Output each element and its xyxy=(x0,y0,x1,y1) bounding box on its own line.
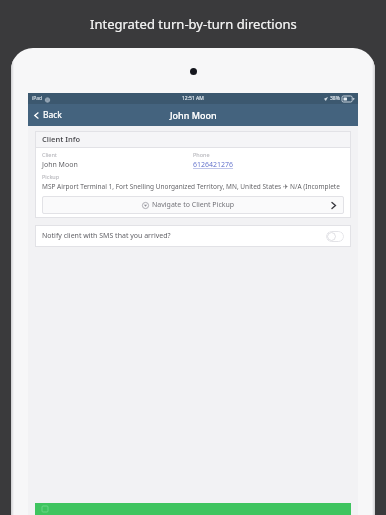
staticText: 38% xyxy=(330,95,340,102)
staticText: Client xyxy=(42,151,57,158)
staticText: Back xyxy=(43,109,62,121)
staticText: John Moon xyxy=(42,160,78,170)
staticText: 12:51 AM xyxy=(182,95,204,102)
staticText: John Moon xyxy=(170,109,217,121)
other: Notify client with SMS toggle xyxy=(326,231,344,242)
staticText: Phone xyxy=(193,151,210,158)
staticText: 6126421276 xyxy=(193,160,234,170)
button[interactable]: Back xyxy=(28,104,70,126)
staticText: Integrated turn-by-turn directions xyxy=(90,15,297,33)
staticText: Client Info xyxy=(42,134,81,144)
button[interactable]: Navigate to Client Pickup xyxy=(42,196,344,214)
staticText: Notify client with SMS that you arrived? xyxy=(42,231,326,241)
staticText: MSP Airport Terminal 1, Fort Snelling Un… xyxy=(42,182,344,191)
staticText: Navigate to Client Pickup xyxy=(152,200,235,210)
staticText: Pickup xyxy=(42,173,60,180)
button[interactable]: Notify client with SMS that you arrived? xyxy=(35,225,351,247)
button[interactable]: 6126421276 xyxy=(193,160,234,170)
staticText: iPad xyxy=(32,95,43,102)
